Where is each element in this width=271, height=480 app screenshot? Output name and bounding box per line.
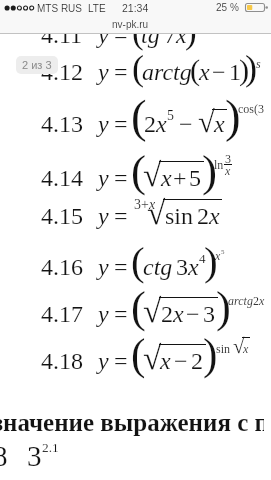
staticText: x [225, 164, 231, 177]
staticText: ) [202, 146, 218, 196]
staticText: cos(3 [238, 102, 264, 115]
staticText: x [176, 22, 187, 49]
staticText: x [188, 254, 199, 281]
staticText: s [256, 57, 261, 70]
staticText: √ [143, 292, 162, 329]
staticText: x [209, 203, 220, 230]
staticText: x [243, 342, 249, 355]
staticText: 5 [221, 248, 225, 256]
staticText: y [98, 22, 109, 49]
staticText: 3 [176, 254, 188, 281]
staticText: ( [132, 48, 145, 88]
staticText: y [98, 254, 109, 281]
staticText: 4 [199, 251, 206, 266]
staticText: 4.15 [41, 203, 83, 230]
staticText: ) [245, 48, 258, 88]
staticText: ( [190, 53, 201, 87]
staticText: 2 [144, 111, 156, 138]
staticText: 4.17 [41, 301, 83, 328]
staticText: 5 [167, 108, 174, 123]
staticText: 2 [191, 348, 203, 375]
staticText: x [214, 111, 225, 138]
staticText: sin [165, 203, 194, 230]
staticText: + [173, 165, 187, 192]
staticText: ) [239, 53, 250, 87]
staticText: x [173, 301, 184, 328]
staticText: y [98, 348, 109, 375]
staticText: x [160, 348, 171, 375]
staticText: = [114, 22, 128, 49]
staticText: nv-pk.ru [112, 19, 149, 30]
staticText: √ [233, 334, 245, 357]
staticText: y [98, 59, 109, 86]
staticText: = [114, 59, 128, 86]
staticText: 4.12 [41, 59, 83, 86]
staticText: ) [185, 12, 197, 51]
staticText: 5 [189, 165, 201, 192]
staticText: x [161, 165, 172, 192]
staticText: ( [131, 146, 147, 196]
staticText: = [114, 301, 128, 328]
staticText: √ [198, 105, 215, 139]
staticText: y [98, 203, 109, 230]
staticText: 4.16 [41, 254, 83, 281]
staticText: 3 [134, 197, 141, 212]
staticText: − [186, 301, 200, 328]
staticText: 21:34 [122, 2, 149, 14]
staticText: ln [214, 158, 224, 171]
staticText: 3 [27, 440, 42, 472]
staticText: = [114, 203, 128, 230]
staticText: √ [147, 194, 166, 231]
staticText: ( [132, 12, 144, 51]
staticText: ) [204, 238, 218, 283]
staticText: ) [203, 330, 218, 378]
staticText: 4.13 [41, 111, 83, 138]
staticText: √ [143, 339, 162, 376]
staticText: x [259, 294, 265, 307]
staticText: arctg [142, 59, 192, 86]
staticText: LTE [88, 3, 106, 14]
staticText: x [215, 249, 221, 262]
staticText: x [149, 197, 156, 212]
staticText: = [114, 348, 128, 375]
staticText: 4.18 [41, 348, 83, 375]
staticText: ( [131, 282, 146, 331]
staticText: 2 [197, 203, 209, 230]
staticText: arctg [228, 294, 253, 307]
staticText: 25 % [216, 2, 239, 13]
staticText: sin [216, 342, 231, 355]
staticText: MTS RUS [37, 3, 82, 14]
staticText: 4.11 [41, 22, 83, 49]
staticText: ( [131, 330, 146, 378]
staticText: x [199, 59, 210, 86]
staticText: ctg [143, 254, 173, 281]
staticText: = [114, 111, 128, 138]
staticText: √ [143, 156, 162, 193]
staticText: ) [225, 90, 241, 142]
staticText: 7 [164, 22, 176, 49]
staticText: 8 [0, 440, 8, 472]
staticText: 3 [203, 301, 215, 328]
staticText: 4.14 [41, 165, 83, 192]
staticText: значение выражения с под [0, 409, 264, 437]
staticText: x [156, 111, 167, 138]
staticText: 2 из 3 [22, 59, 52, 71]
staticText: 2 [253, 294, 259, 307]
staticText: ) [216, 282, 231, 331]
staticText: y [98, 165, 109, 192]
staticText: − [174, 348, 188, 375]
staticText: = [114, 254, 128, 281]
staticText: = [114, 165, 128, 192]
staticText: s [195, 21, 200, 34]
staticText: tg [141, 22, 160, 49]
button[interactable]: 2 из 3 [22, 59, 52, 71]
staticText: ( [131, 238, 145, 283]
staticText: 3 [225, 152, 231, 165]
staticText: − [179, 111, 193, 138]
staticText: ( [131, 90, 147, 142]
staticText: y [98, 301, 109, 328]
staticText: 2.1 [42, 440, 59, 455]
staticText: 1 [229, 59, 241, 86]
staticText: + [141, 197, 149, 212]
staticText: − [212, 59, 226, 86]
